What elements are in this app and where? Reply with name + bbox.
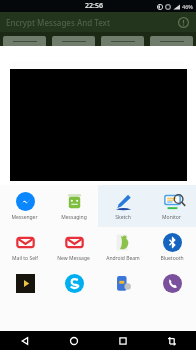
staticText: New Message bbox=[57, 255, 90, 262]
staticText: Sketch bbox=[115, 214, 131, 221]
button[interactable]: Messaging bbox=[49, 187, 98, 224]
button[interactable]: Tab bbox=[52, 36, 95, 46]
button[interactable]: Bluetooth bbox=[147, 228, 196, 265]
staticText: 22:56 bbox=[85, 1, 103, 11]
button[interactable]: Drive bbox=[98, 269, 147, 297]
staticText: Mail to Self bbox=[12, 255, 38, 262]
button[interactable]: Back bbox=[0, 331, 49, 350]
button[interactable]: Viber bbox=[147, 269, 196, 297]
button[interactable]: Tab bbox=[3, 36, 46, 46]
button[interactable]: Info bbox=[175, 14, 191, 30]
button[interactable]: Home bbox=[49, 331, 98, 350]
button[interactable]: New Message bbox=[49, 228, 98, 265]
button[interactable]: Mail to Self bbox=[0, 228, 49, 265]
button[interactable]: Tab bbox=[101, 36, 144, 46]
staticText: Bluetooth bbox=[160, 255, 184, 262]
staticText: 46% bbox=[182, 3, 193, 10]
button[interactable]: Recent apps bbox=[98, 331, 147, 350]
staticText: Android Beam bbox=[106, 255, 140, 262]
staticText: Messaging bbox=[61, 214, 87, 221]
button[interactable]: Search bbox=[169, 190, 189, 210]
button[interactable]: Tab bbox=[150, 36, 193, 46]
button[interactable]: Screenshot bbox=[147, 331, 196, 350]
button[interactable]: Android Beam bbox=[98, 228, 147, 265]
button[interactable]: Skype bbox=[49, 269, 98, 297]
staticText: Monitor bbox=[162, 214, 181, 221]
staticText: Messenger bbox=[11, 214, 38, 221]
button[interactable]: Monitor bbox=[147, 187, 196, 224]
staticText: Encrypt Messages And Text bbox=[6, 17, 110, 28]
button[interactable]: Messenger bbox=[0, 187, 49, 224]
button[interactable]: Sketch bbox=[98, 187, 147, 224]
button[interactable]: Video bbox=[0, 269, 49, 297]
